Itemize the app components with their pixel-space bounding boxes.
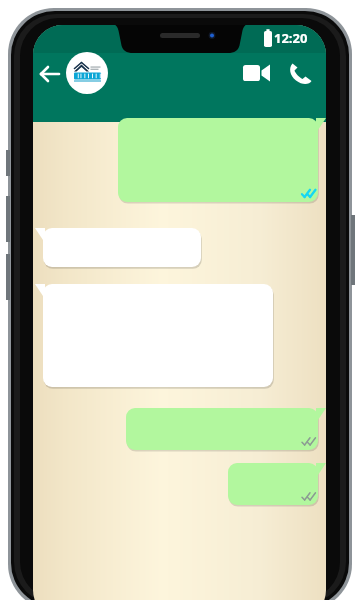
button[interactable]: Received message <box>35 228 201 267</box>
button[interactable]: Sent message <box>126 408 326 450</box>
button[interactable]: Sent message <box>118 118 326 202</box>
button[interactable]: Sent message <box>228 463 326 505</box>
button[interactable]: Received message <box>35 284 273 387</box>
button[interactable]: Video call <box>240 57 274 91</box>
button[interactable]: Back <box>36 60 66 90</box>
staticText: 12:20 <box>274 29 308 47</box>
button[interactable]: Contact avatar, И ТОЧКА <box>66 52 108 94</box>
button[interactable]: Voice call <box>284 57 318 91</box>
